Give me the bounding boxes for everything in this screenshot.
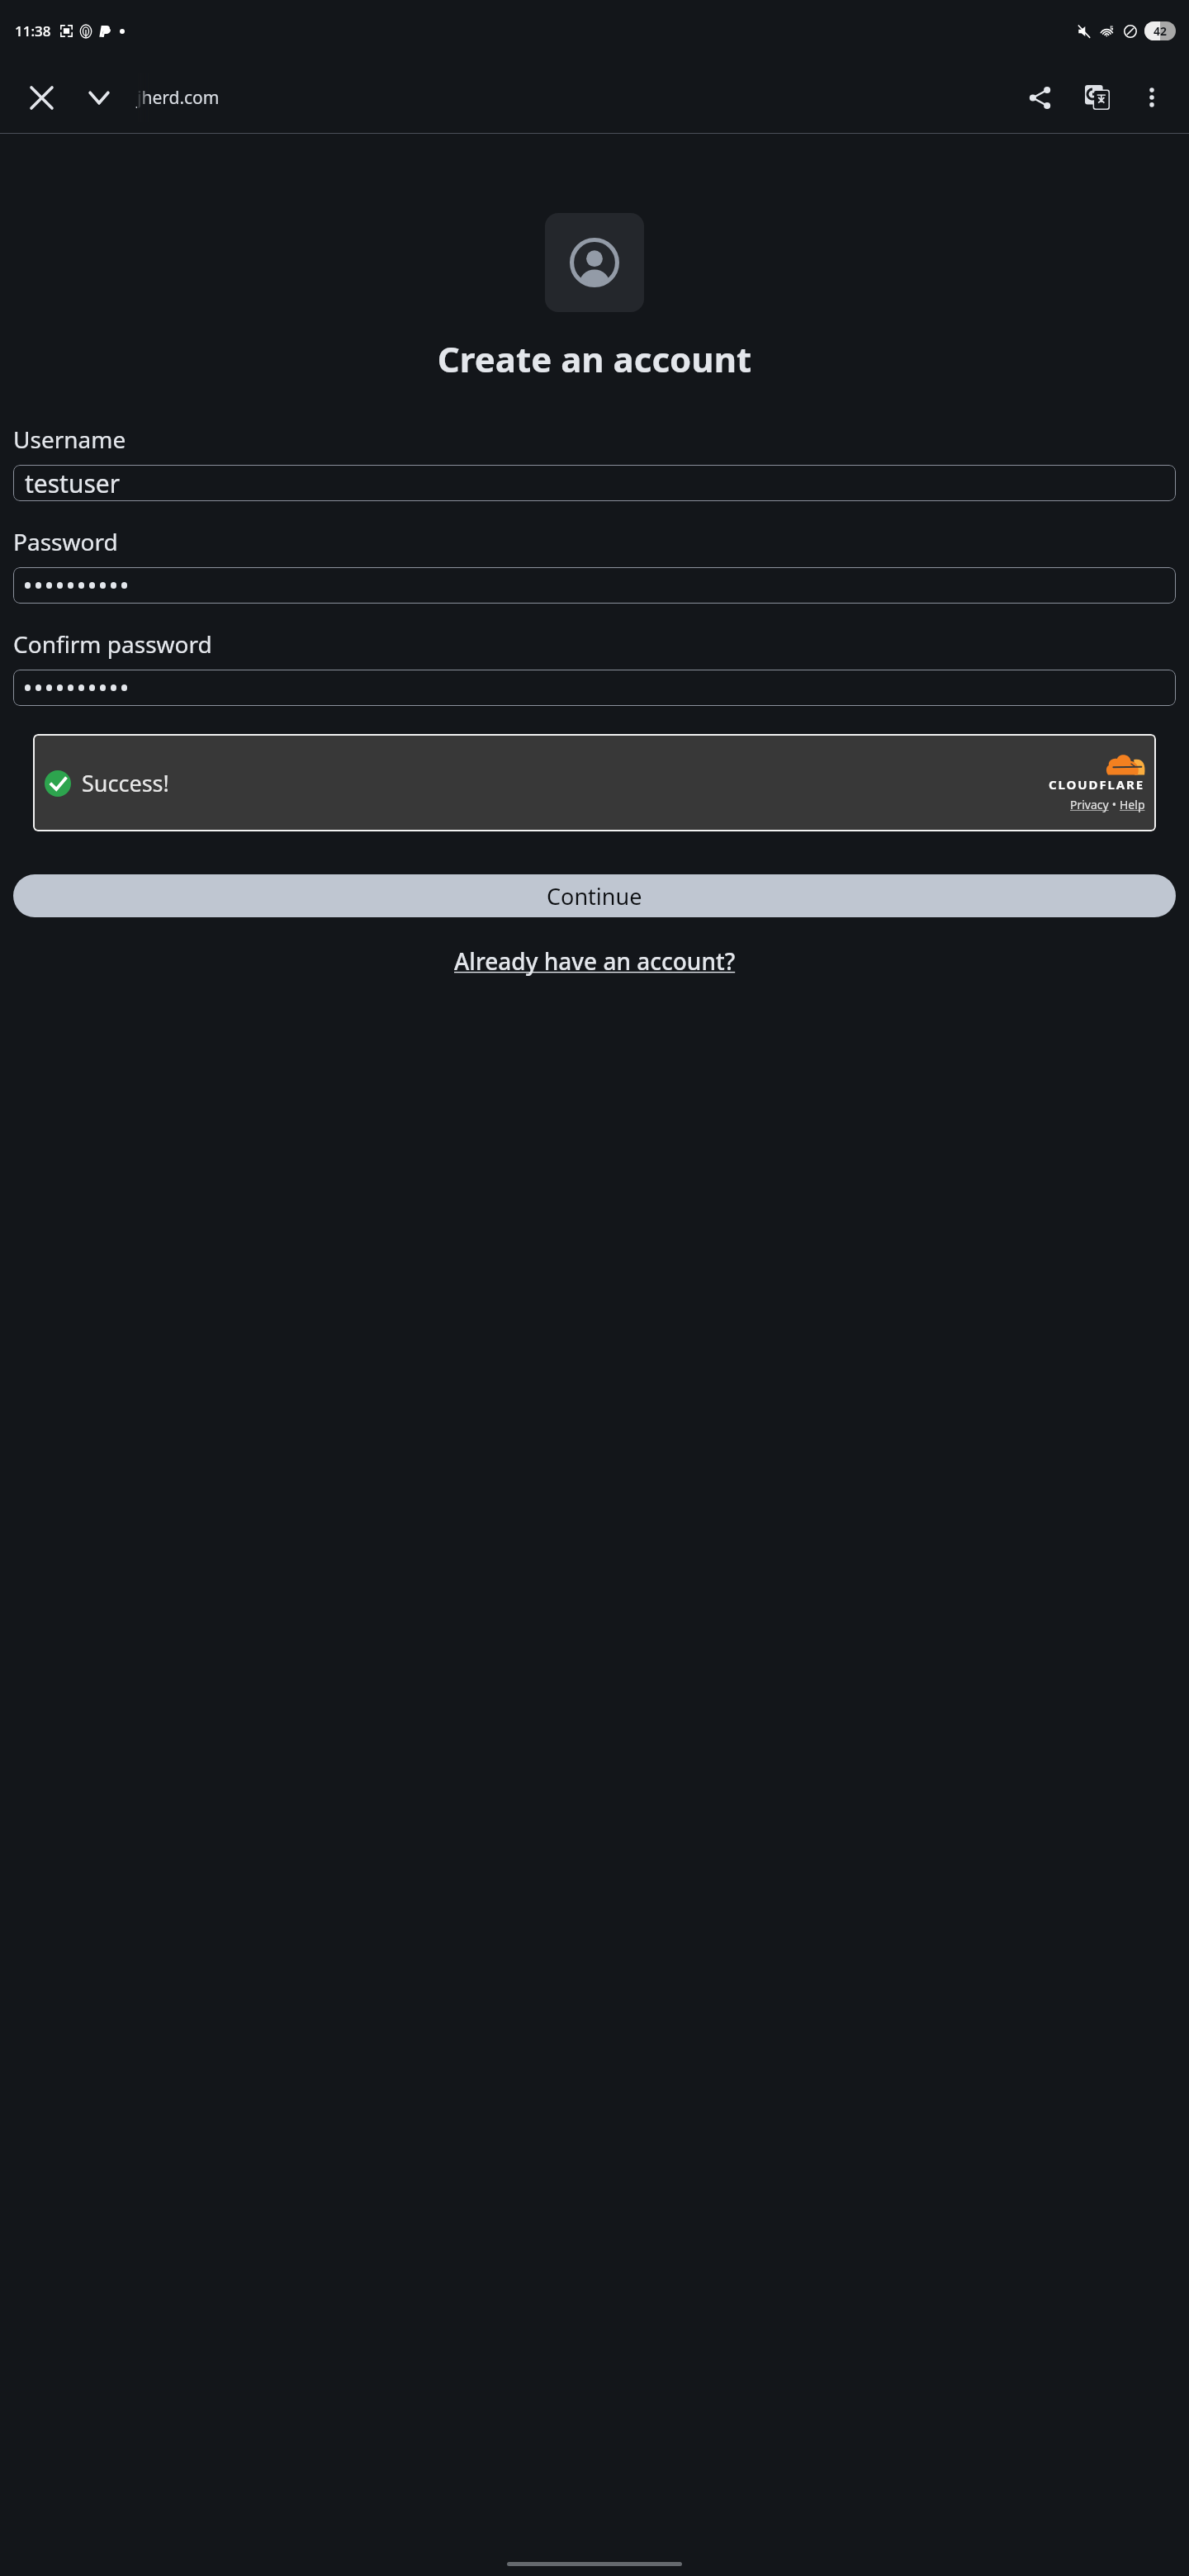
staticText: Continue bbox=[547, 881, 642, 912]
staticText: • bbox=[1109, 797, 1120, 812]
staticText: jherd.com bbox=[137, 86, 220, 110]
button[interactable]: Close bbox=[17, 73, 66, 122]
staticText: 42 bbox=[1153, 23, 1168, 39]
button[interactable] bbox=[13, 670, 1176, 706]
button[interactable]: Translate bbox=[1068, 69, 1126, 126]
staticText: CLOUDFLARE bbox=[1049, 776, 1145, 793]
button[interactable]: Continue bbox=[13, 874, 1176, 917]
button[interactable]: More options bbox=[1126, 72, 1177, 123]
button[interactable]: testuser bbox=[13, 465, 1176, 501]
button[interactable]: Collapse bbox=[74, 73, 124, 122]
button[interactable]: Already have an account? bbox=[0, 945, 1189, 977]
staticText: 11:38 bbox=[15, 21, 51, 40]
button[interactable]: Help bbox=[1120, 797, 1145, 812]
button[interactable]: Share bbox=[1011, 69, 1068, 126]
button[interactable]: Success! bbox=[33, 734, 1156, 831]
staticText: Confirm password bbox=[13, 628, 212, 660]
staticText: Success! bbox=[82, 768, 169, 798]
button[interactable]: jherd.com bbox=[137, 73, 1002, 122]
staticText: Create an account bbox=[0, 335, 1189, 382]
staticText: Password bbox=[13, 526, 118, 557]
button[interactable] bbox=[13, 567, 1176, 604]
button[interactable]: Privacy bbox=[1070, 797, 1109, 812]
staticText: Already have an account? bbox=[454, 945, 736, 977]
staticText: Username bbox=[13, 424, 126, 455]
staticText: testuser bbox=[25, 466, 121, 500]
